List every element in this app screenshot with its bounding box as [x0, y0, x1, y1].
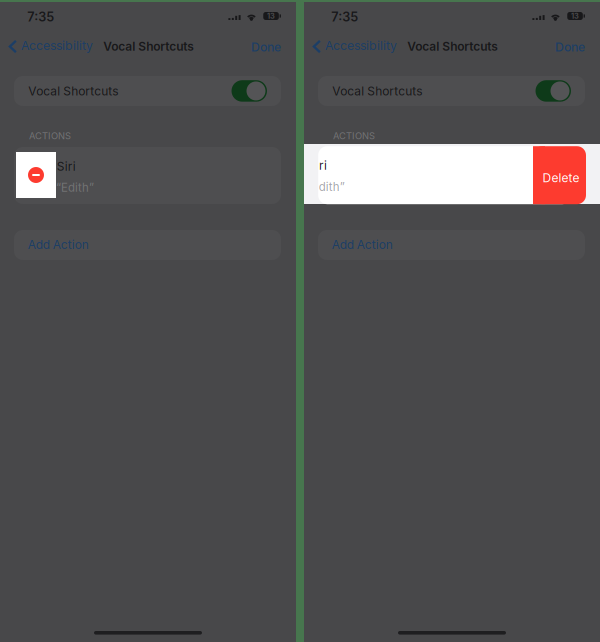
button[interactable]: Remove Siri shortcut: [16, 152, 56, 198]
button[interactable]: Add Action: [318, 230, 585, 260]
staticText: dith”: [319, 180, 345, 194]
staticText: Accessibility: [325, 38, 397, 53]
button[interactable]: Done: [548, 33, 592, 60]
staticText: Vocal Shortcuts: [103, 39, 194, 54]
staticText: Siri: [57, 159, 76, 173]
staticText: Done: [251, 39, 281, 54]
button[interactable]: Accessibility: [0, 32, 99, 59]
staticText: Add Action: [28, 237, 89, 252]
staticText: Add Action: [332, 237, 393, 252]
staticText: Vocal Shortcuts: [28, 84, 118, 98]
staticText: Delete: [542, 171, 579, 185]
staticText: 13: [267, 11, 275, 20]
staticText: ACTIONS: [333, 130, 375, 142]
button[interactable]: Delete: [533, 146, 586, 204]
staticText: ri: [319, 158, 327, 173]
staticText: 7:35: [331, 9, 358, 25]
button[interactable]: Accessibility: [304, 32, 403, 59]
staticText: Accessibility: [21, 38, 93, 53]
staticText: ACTIONS: [29, 130, 71, 142]
staticText: 7:35: [27, 9, 54, 25]
staticText: Done: [555, 39, 585, 54]
staticText: “Edith”: [56, 181, 94, 195]
staticText: Vocal Shortcuts: [332, 84, 422, 98]
button[interactable]: Done: [244, 33, 288, 60]
staticText: 13: [571, 11, 579, 20]
button[interactable]: Add Action: [14, 230, 281, 260]
staticText: Vocal Shortcuts: [407, 39, 498, 54]
